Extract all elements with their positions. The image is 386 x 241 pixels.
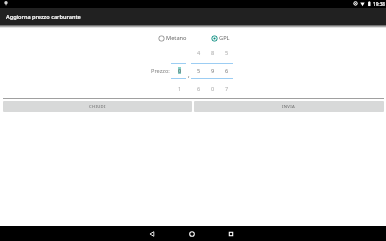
- staticText: 1: [178, 85, 182, 93]
- button[interactable]: 8: [205, 46, 219, 92]
- button[interactable]: INVIA: [194, 101, 384, 112]
- button[interactable]: Home: [182, 226, 202, 241]
- staticText: ,: [188, 70, 190, 78]
- staticText: 5: [197, 67, 201, 75]
- staticText: Prezzo:: [151, 67, 170, 75]
- staticText: Aggiorna prezzo carburante: [6, 13, 81, 21]
- staticText: Metano: [166, 34, 187, 42]
- staticText: CHIUDI: [89, 104, 106, 110]
- staticText: 0: [178, 67, 182, 75]
- staticText: 8: [211, 49, 215, 57]
- staticText: INVIA: [282, 104, 296, 110]
- staticText: 0: [211, 85, 215, 93]
- staticText: 6: [225, 67, 229, 75]
- staticText: 5: [225, 49, 229, 57]
- button[interactable]: CHIUDI: [3, 101, 192, 112]
- staticText: 9: [211, 67, 215, 75]
- staticText: 6: [197, 85, 201, 93]
- staticText: 7: [225, 85, 229, 93]
- button[interactable]: Recent apps: [221, 226, 241, 241]
- button[interactable]: GPL: [210, 33, 231, 43]
- staticText: 19:38: [373, 1, 386, 7]
- button[interactable]: Back: [142, 226, 162, 241]
- button[interactable]: 0: [171, 46, 186, 92]
- button[interactable]: Metano: [157, 33, 188, 43]
- button[interactable]: 5: [219, 46, 233, 92]
- staticText: 4: [197, 49, 201, 57]
- staticText: GPL: [219, 34, 230, 42]
- button[interactable]: 4: [191, 46, 205, 92]
